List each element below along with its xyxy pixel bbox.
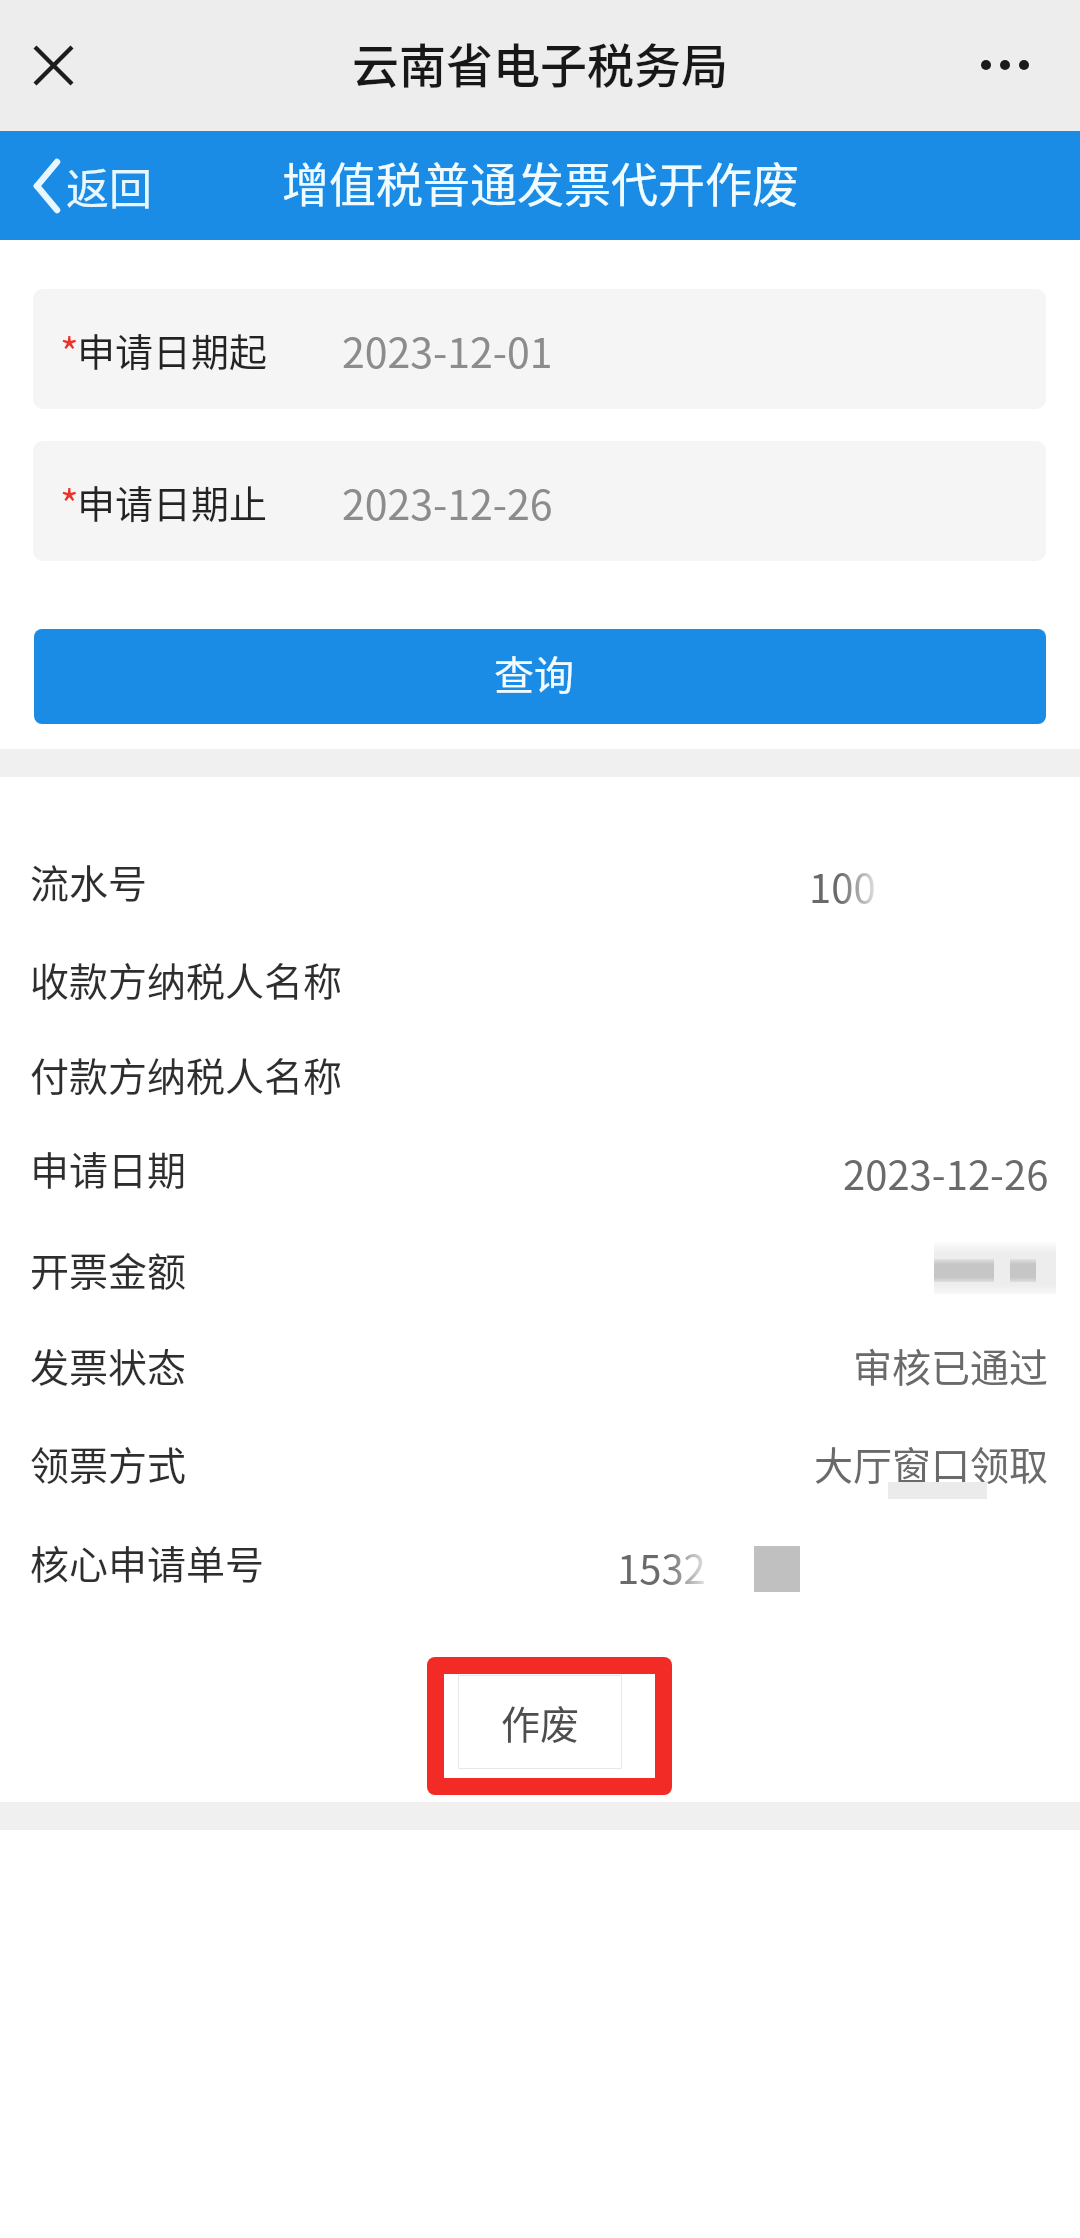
staticText: * [60,322,79,380]
button[interactable]: 核心申请单号 [0,1514,1080,1610]
staticText: 申请日期止 [77,474,268,529]
staticText: 云南省电子税务局 [352,28,728,96]
staticText: 返回 [66,155,152,217]
button[interactable]: More options [981,27,1029,103]
button[interactable]: 开票金额 [0,1221,1080,1317]
button[interactable]: 流水号 [0,833,1080,929]
staticText: 核心申请单号 [30,1534,265,1590]
staticText: 审核已通过 [853,1337,1049,1393]
staticText: 查询 [494,644,574,702]
staticText: 100 [809,857,876,915]
button[interactable]: 查询 [34,629,1046,724]
staticText: 收款方纳税人名称 [30,951,343,1007]
button[interactable]: Close [14,26,92,104]
staticText: 2023-12-01 [342,320,553,379]
button[interactable]: 付款方纳税人名称 [0,1026,1080,1122]
button[interactable]: * [33,441,1046,561]
staticText: 1532 [617,1538,706,1596]
button[interactable]: 返回 [0,131,172,240]
button[interactable]: 发票状态 [0,1317,1080,1413]
staticText: 发票状态 [30,1337,187,1393]
staticText: 领票方式 [30,1435,187,1491]
staticText: 申请日期起 [77,322,268,377]
staticText: 大厅窗口领取 [814,1435,1049,1491]
button[interactable]: 作废 [458,1675,622,1769]
staticText: 付款方纳税人名称 [30,1046,343,1102]
button[interactable]: 领票方式 [0,1415,1080,1511]
staticText: 2023-12-26 [342,472,553,531]
staticText: 作废 [501,1694,580,1750]
staticText: 增值税普通发票代开作废 [282,147,799,215]
button[interactable]: * [33,289,1046,409]
button[interactable]: 申请日期 [0,1120,1080,1216]
staticText: 开票金额 [30,1241,187,1297]
staticText: * [60,474,79,532]
staticText: 2023-12-26 [843,1144,1049,1202]
button[interactable]: 收款方纳税人名称 [0,931,1080,1027]
staticText: 流水号 [30,853,148,909]
staticText: 申请日期 [30,1140,187,1196]
